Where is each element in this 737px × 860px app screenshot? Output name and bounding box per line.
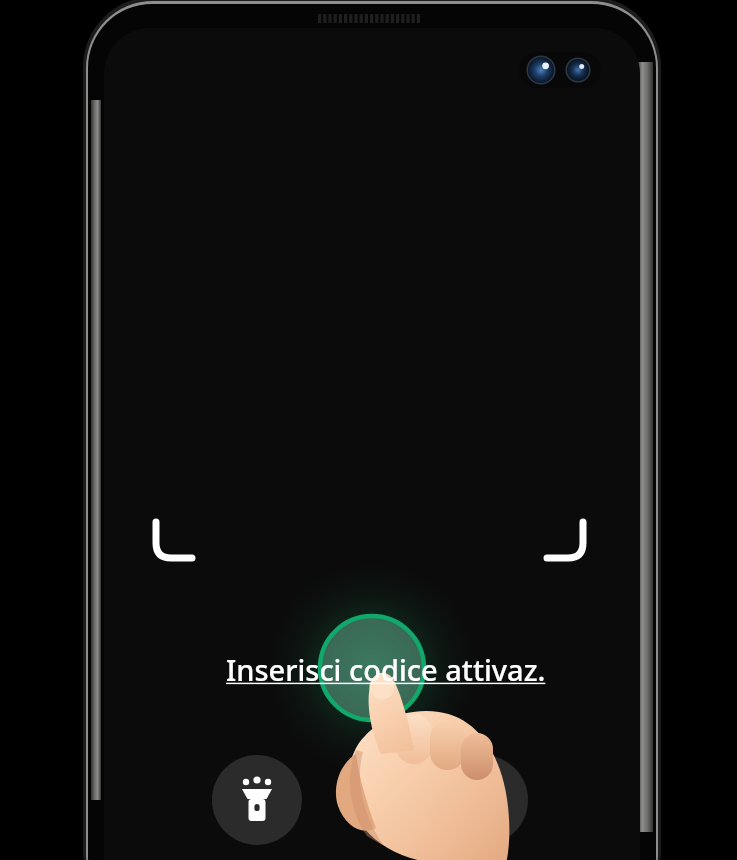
button[interactable]: Galleria [438, 755, 528, 845]
button[interactable]: Tocca per inserire il codice [320, 616, 424, 720]
staticText: Inserisci codice attivaz. [226, 650, 546, 689]
button[interactable]: Inserisci codice attivaz. [226, 650, 546, 689]
button[interactable]: Torcia [212, 755, 302, 845]
